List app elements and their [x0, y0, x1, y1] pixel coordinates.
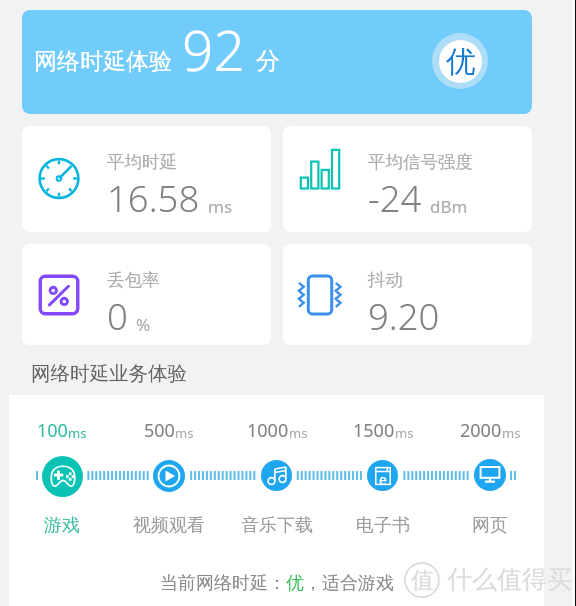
- button[interactable]: 评分 优: [432, 33, 488, 89]
- staticText: 2000: [460, 418, 502, 443]
- button[interactable]: 丢包率: [22, 244, 271, 345]
- staticText: ，适合游戏: [304, 572, 394, 595]
- staticText: 丢包率: [107, 269, 160, 291]
- staticText: ms: [502, 424, 521, 442]
- staticText: 网络时延业务体验: [31, 361, 187, 386]
- staticText: 电子书: [356, 514, 410, 537]
- staticText: 优: [446, 43, 476, 81]
- staticText: 视频观看: [133, 514, 205, 537]
- staticText: 优: [286, 572, 304, 595]
- button[interactable]: 网页: [474, 459, 506, 491]
- staticText: 分: [256, 46, 280, 76]
- button[interactable]: 网页: [440, 511, 540, 537]
- button[interactable]: 电子书: [367, 460, 398, 491]
- button[interactable]: 游戏: [12, 511, 112, 537]
- staticText: ms: [208, 195, 233, 218]
- staticText: 值: [411, 566, 434, 595]
- staticText: 1500: [353, 418, 395, 443]
- staticText: 平均信号强度: [368, 151, 473, 173]
- button[interactable]: 平均信号强度: [283, 126, 532, 232]
- staticText: 500: [144, 418, 175, 443]
- staticText: 什么值得买: [447, 564, 572, 595]
- staticText: 1000: [247, 418, 289, 443]
- staticText: 9.20: [368, 291, 440, 341]
- staticText: ms: [395, 424, 414, 442]
- staticText: ms: [289, 424, 308, 442]
- staticText: -24: [368, 173, 422, 223]
- staticText: 92: [182, 12, 245, 87]
- staticText: 网页: [472, 514, 508, 537]
- staticText: e: [379, 470, 387, 489]
- button[interactable]: 音乐下载: [227, 511, 327, 537]
- button[interactable]: 视频观看: [153, 460, 185, 492]
- staticText: 抖动: [368, 269, 403, 291]
- staticText: 音乐下载: [241, 514, 313, 537]
- staticText: 平均时延: [107, 151, 177, 173]
- staticText: 100: [37, 418, 68, 443]
- staticText: 16.58: [107, 173, 200, 223]
- button[interactable]: 平均时延: [22, 126, 271, 232]
- staticText: 0: [107, 291, 128, 341]
- staticText: dBm: [430, 195, 468, 218]
- staticText: 游戏: [44, 514, 80, 537]
- button[interactable]: [22, 10, 532, 114]
- staticText: %: [136, 313, 151, 336]
- button[interactable]: 抖动: [283, 244, 532, 345]
- staticText: 当前网络时延：: [160, 572, 286, 595]
- button[interactable]: 音乐下载: [261, 460, 292, 491]
- staticText: 网络时延体验: [34, 47, 172, 76]
- button[interactable]: 电子书: [333, 511, 433, 537]
- button[interactable]: 视频观看: [119, 511, 219, 537]
- staticText: ms: [68, 424, 87, 442]
- staticText: ms: [175, 424, 194, 442]
- button[interactable]: 游戏: [42, 456, 83, 497]
